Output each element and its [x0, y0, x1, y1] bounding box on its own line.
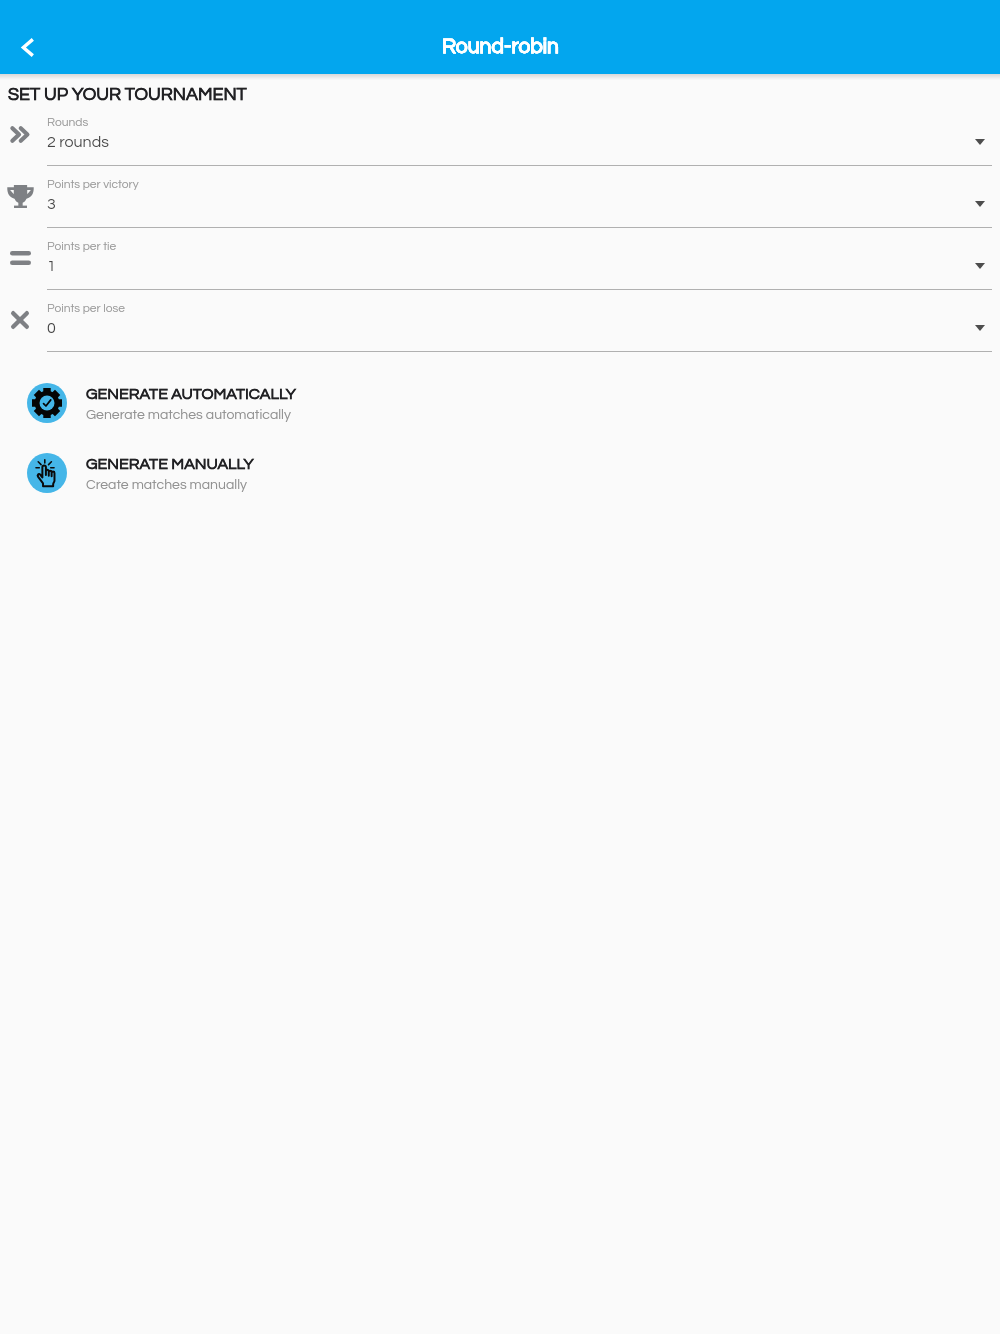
staticText: Generate matches automatically [86, 408, 291, 422]
button[interactable]: Back [5, 25, 49, 69]
staticText: Round-robin [442, 36, 559, 58]
staticText: Points per tie [47, 240, 117, 252]
button[interactable]: Points per lose [0, 289, 1000, 352]
staticText: GENERATE AUTOMATICALLY [86, 386, 297, 402]
staticText: Points per victory [47, 178, 139, 190]
staticText: 2 rounds [47, 134, 109, 150]
staticText: Points per lose [47, 302, 125, 314]
button[interactable]: GENERATE AUTOMATICALLY [0, 378, 1000, 440]
staticText: Create matches manually [86, 478, 247, 492]
staticText: GENERATE MANUALLY [86, 456, 254, 472]
staticText: 3 [47, 196, 56, 212]
button[interactable]: Points per tie [0, 227, 1000, 290]
staticText: 0 [47, 320, 56, 336]
button[interactable]: GENERATE MANUALLY [0, 448, 1000, 510]
button[interactable]: Points per victory [0, 165, 1000, 228]
staticText: 1 [47, 258, 56, 274]
staticText: Round-robin [442, 36, 559, 58]
staticText: Rounds [47, 116, 89, 128]
staticText: GENERATE MANUALLY [86, 456, 254, 472]
staticText: GENERATE AUTOMATICALLY [86, 386, 297, 402]
staticText: SET UP YOUR TOURNAMENT [8, 85, 247, 104]
button[interactable]: Rounds [0, 103, 1000, 166]
staticText: SET UP YOUR TOURNAMENT [8, 85, 247, 104]
